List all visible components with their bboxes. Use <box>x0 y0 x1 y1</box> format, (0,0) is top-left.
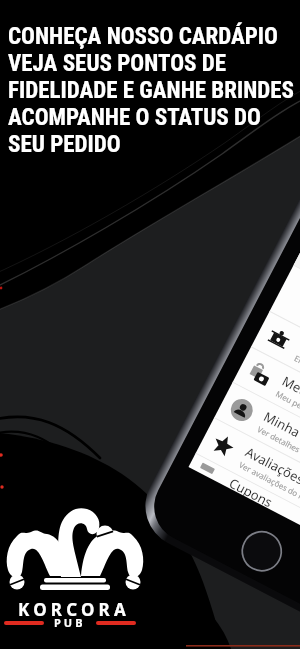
staticText: Entrar no cardápio <box>293 352 300 394</box>
button[interactable]: Meu Pedido <box>233 347 300 478</box>
button[interactable]: Minha Conta <box>214 383 300 513</box>
staticText: Ver detalhes da minha conta <box>256 423 300 483</box>
staticText: KORCORA <box>18 598 130 621</box>
staticText: Faça seu pedido <box>298 336 300 398</box>
staticText: Meu Pedido <box>279 372 300 422</box>
staticText: SEU PEDIDO <box>8 131 121 158</box>
staticText: Meu pedido em andamento <box>274 388 300 446</box>
staticText: FIDELIDADE E GANHE BRINDES <box>8 77 295 104</box>
staticText: Minha Conta <box>261 407 300 459</box>
staticText: ACOMPANHE O STATUS DO <box>8 104 261 131</box>
button[interactable]: Faça seu pedido <box>251 312 300 442</box>
button[interactable]: Avaliações <box>196 418 300 549</box>
staticText: CONHEÇA NOSSO CARDÁPIO <box>8 23 278 50</box>
staticText: Ver avaliações do restaurante <box>237 459 300 520</box>
staticText: Cupons <box>227 474 276 509</box>
button[interactable]: Cupons <box>188 454 300 563</box>
staticText: PUB <box>54 615 86 630</box>
staticText: VEJA SEUS PONTOS DE <box>8 50 227 77</box>
staticText: Avaliações <box>242 443 300 488</box>
